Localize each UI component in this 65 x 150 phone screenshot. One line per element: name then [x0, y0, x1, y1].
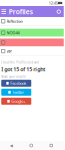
button[interactable]: Twitter — [1, 89, 31, 96]
staticText: 12:45 — [49, 0, 58, 6]
button[interactable]: Reflection — [0, 17, 64, 25]
button[interactable]: Menu — [0, 6, 9, 17]
staticText: Google+ — [11, 99, 25, 104]
button[interactable]: Search — [54, 6, 64, 17]
staticText: Twitter — [12, 90, 24, 95]
button[interactable]: Back — [5, 141, 17, 149]
staticText: I got 15 of 15 right — [1, 65, 45, 73]
button[interactable] — [0, 38, 64, 46]
staticText: VIP — [7, 48, 12, 54]
button[interactable]: VIP — [0, 47, 64, 55]
button[interactable]: Recents — [45, 141, 57, 149]
staticText: Share your results: — [1, 75, 26, 78]
button[interactable]: Google+ — [1, 98, 31, 105]
staticText: ◀ — [10, 143, 13, 148]
button[interactable]: Facebook — [1, 80, 31, 87]
staticText: I took the Profiles test and — [1, 61, 39, 64]
button[interactable]: NOD44 — [0, 29, 64, 37]
staticText: Profiles — [9, 7, 33, 16]
staticText: Facebook — [10, 81, 26, 86]
staticText: Reflection — [7, 18, 23, 24]
button[interactable]: Home — [25, 141, 37, 149]
staticText: NOD44 — [7, 30, 20, 35]
